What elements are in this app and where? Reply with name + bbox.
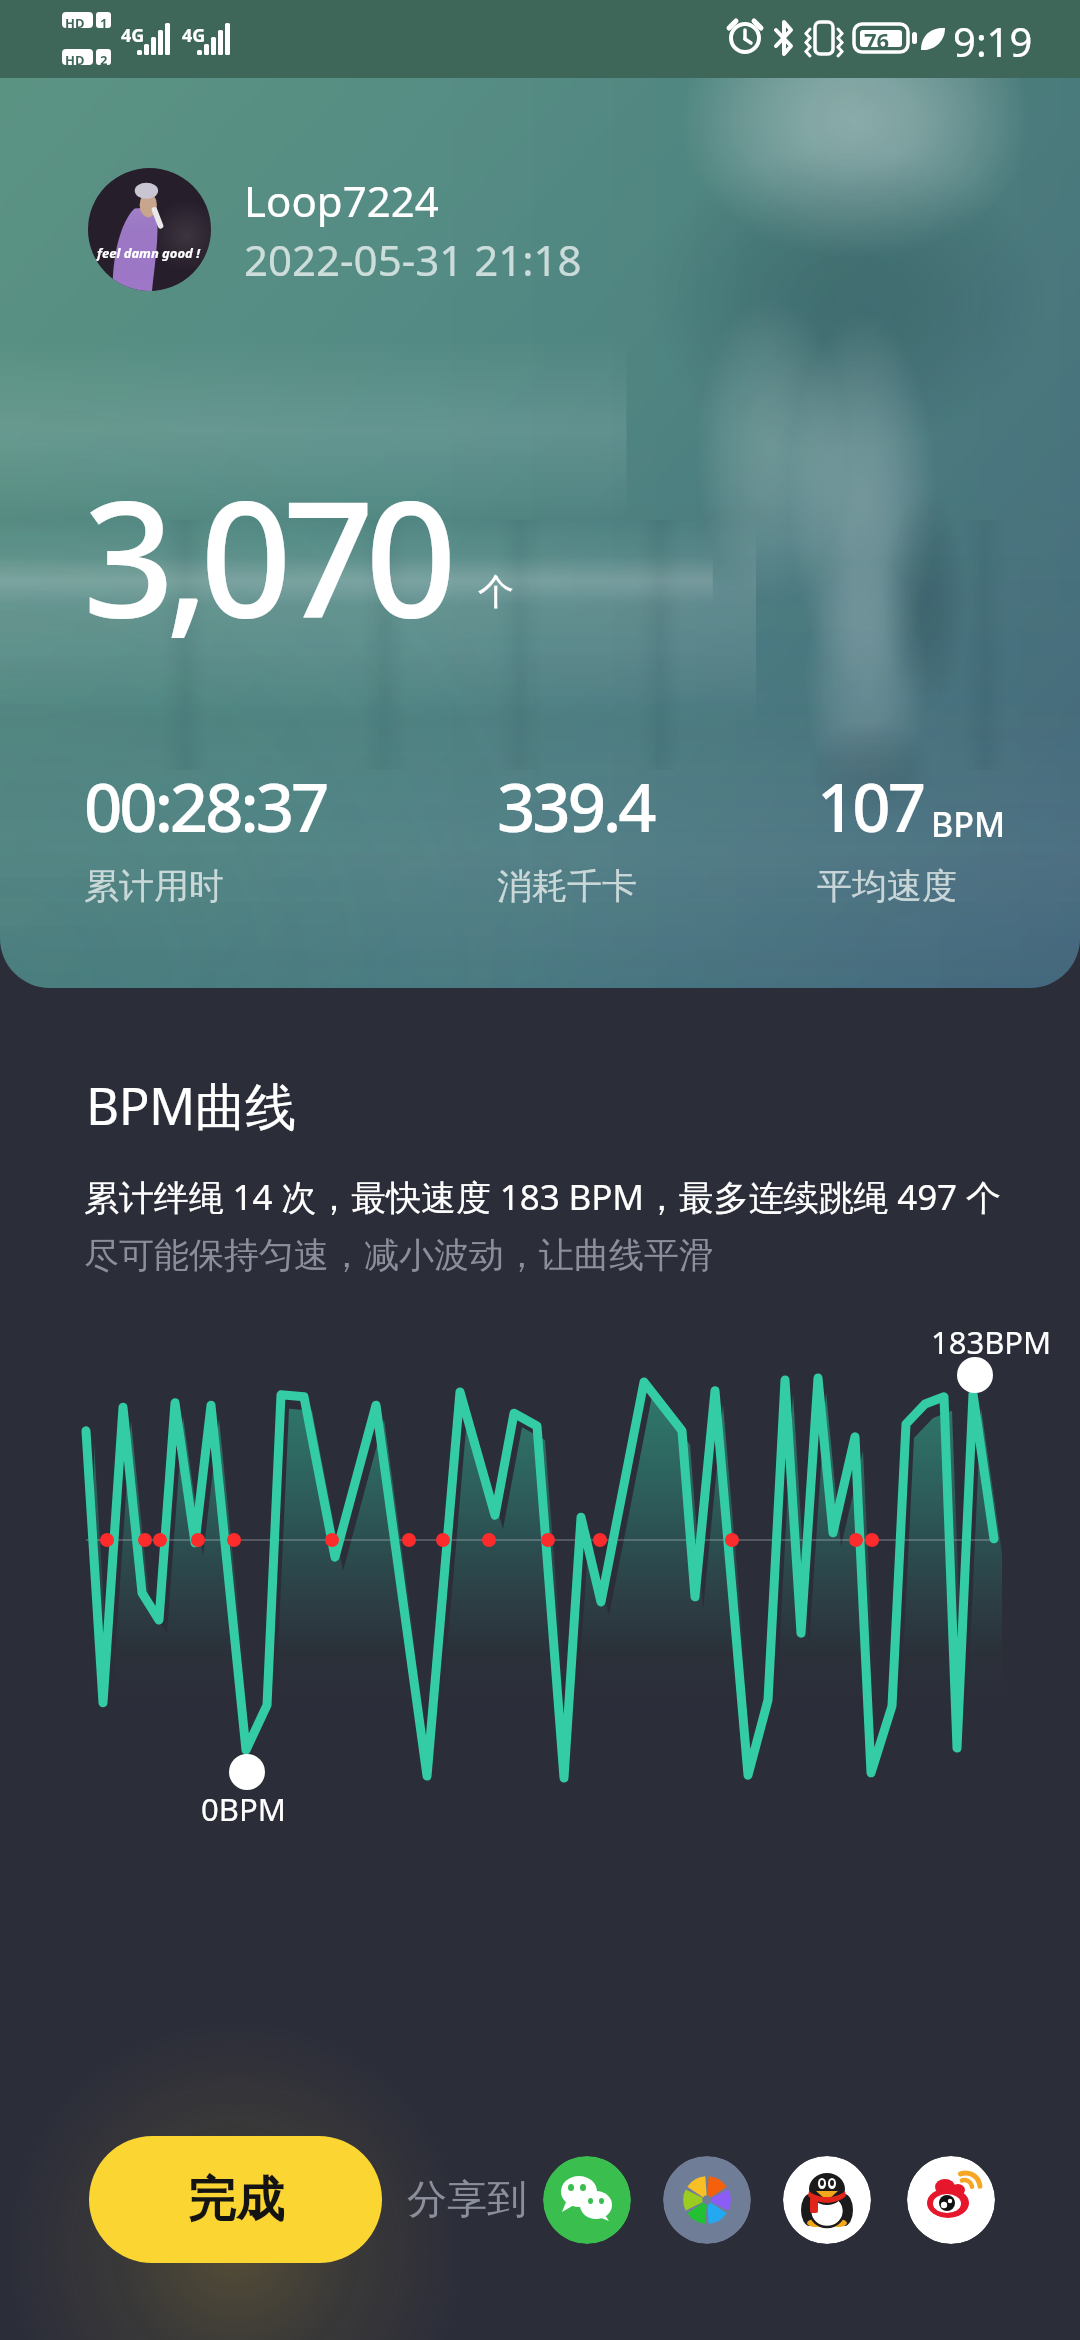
staticText: 尽可能保持匀速，减小波动，让曲线平滑 xyxy=(84,1233,714,1277)
staticText: 4G xyxy=(182,23,206,48)
button[interactable]: Share to QQ xyxy=(783,2156,871,2244)
staticText: 2022-05-31 21:18 xyxy=(244,231,582,288)
staticText: 183BPM xyxy=(931,1321,1052,1363)
staticText: 累计绊绳 14 次，最快速度 183 BPM，最多连续跳绳 497 个 xyxy=(84,1173,1001,1221)
staticText: 1 xyxy=(100,14,108,32)
staticText: Loop7224 xyxy=(244,172,439,229)
staticText: 2 xyxy=(100,51,108,69)
staticText: 0BPM xyxy=(201,1788,286,1830)
staticText: HD xyxy=(65,51,85,69)
staticText: 9:19 xyxy=(953,14,1033,68)
staticText: 4G xyxy=(121,23,145,48)
staticText: 00:28:37 xyxy=(84,760,327,851)
staticText: 完成 xyxy=(188,2170,284,2230)
staticText: 个 xyxy=(478,569,514,614)
staticText: 分享到 xyxy=(407,2174,527,2224)
staticText: 107 xyxy=(817,760,923,851)
button[interactable]: Share to Weibo xyxy=(907,2156,995,2244)
button[interactable]: Share to album xyxy=(663,2156,751,2244)
staticText: feel damn good ! xyxy=(97,244,200,262)
button[interactable]: 完成 xyxy=(89,2136,382,2263)
staticText: 累计用时 xyxy=(84,864,224,908)
button[interactable]: Share to WeChat xyxy=(543,2156,631,2244)
button[interactable]: User avatar xyxy=(88,168,211,291)
staticText: BPM曲线 xyxy=(86,1070,296,1140)
staticText: 3,070 xyxy=(83,446,448,664)
staticText: HD xyxy=(65,14,85,32)
staticText: 消耗千卡 xyxy=(497,864,637,908)
staticText: 339.4 xyxy=(497,760,654,851)
staticText: BPM xyxy=(931,801,1006,847)
staticText: 平均速度 xyxy=(817,864,957,908)
staticText: 76 xyxy=(864,25,890,55)
